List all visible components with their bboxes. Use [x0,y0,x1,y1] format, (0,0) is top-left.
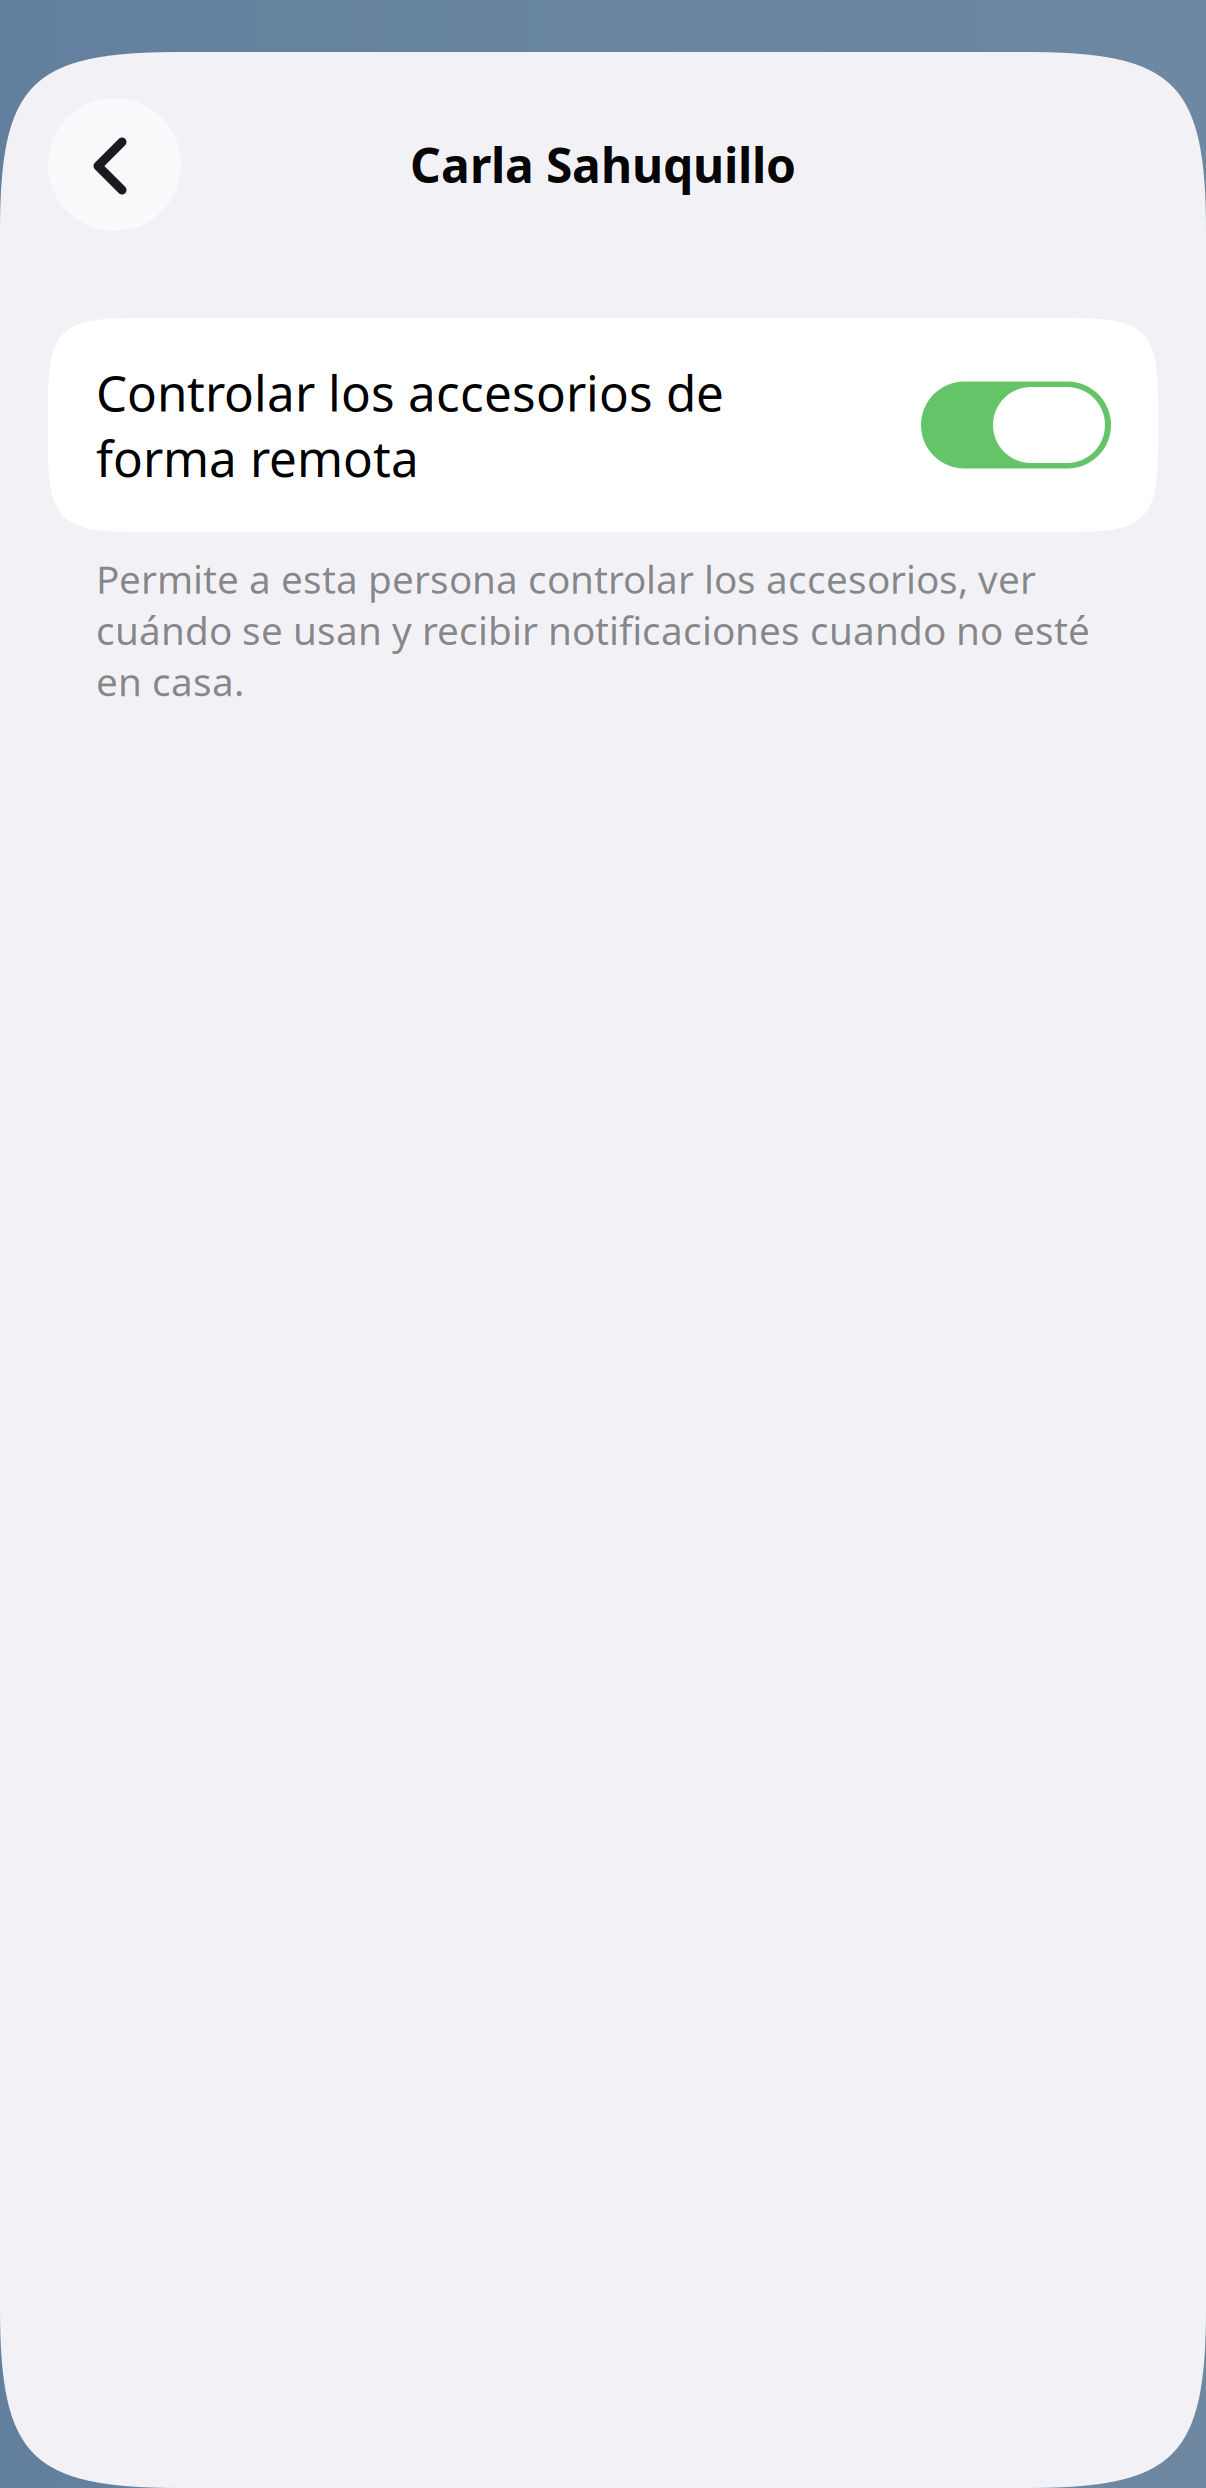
staticText: Carla Sahuquillo [410,133,796,196]
button[interactable]: Back [48,98,181,231]
staticText: Controlar los accesorios de forma remota [96,359,724,490]
button[interactable]: Controlar los accesorios de forma remota [48,318,1158,532]
staticText: Permite a esta persona controlar los acc… [96,553,1090,707]
